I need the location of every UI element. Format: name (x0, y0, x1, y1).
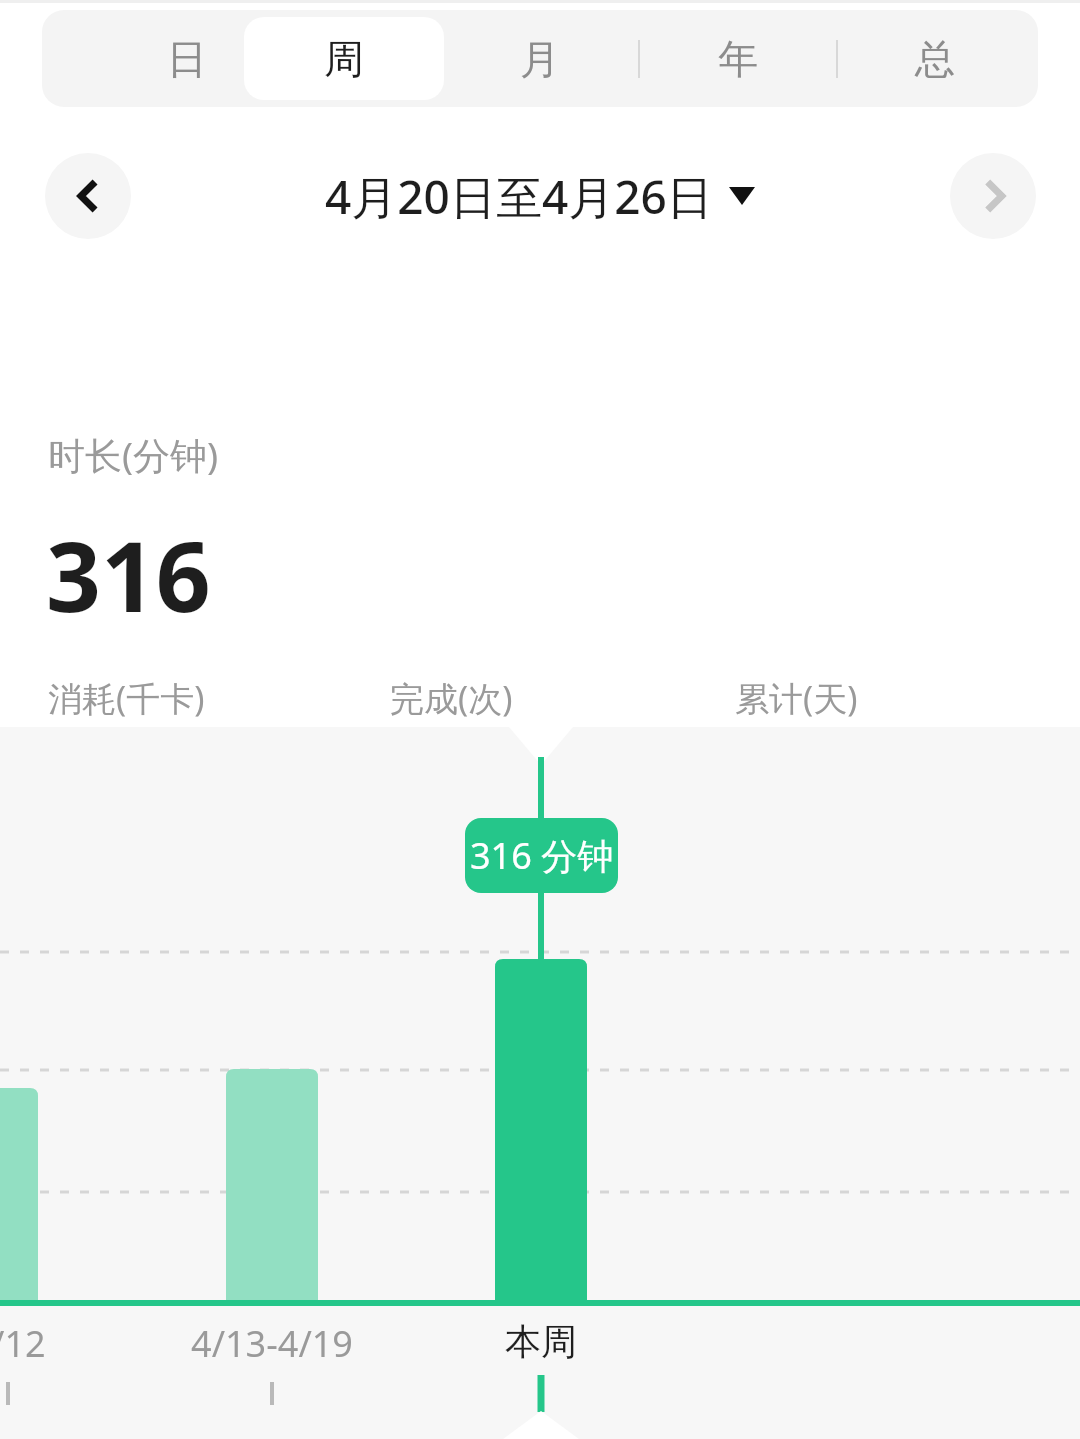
staticText: 本周 (505, 1319, 577, 1364)
button[interactable]: Previous week (45, 153, 131, 239)
button[interactable]: 累计(天) (735, 675, 1035, 808)
button[interactable]: 完成(次) (390, 675, 690, 808)
staticText: 年 (718, 34, 758, 84)
staticText: 时长(分钟) (48, 429, 219, 480)
staticText: 4/13-4/19 (191, 1319, 353, 1368)
button[interactable]: Next week (950, 153, 1036, 239)
staticText: 总 (915, 34, 955, 84)
staticText: 周 (324, 34, 364, 84)
staticText: 消耗(千卡) (48, 675, 205, 721)
staticText: 累计(天) (735, 675, 858, 721)
staticText: 月 (520, 34, 560, 84)
staticText: 316 (46, 509, 211, 640)
staticText: 日 (167, 34, 207, 84)
button[interactable]: 316 分钟 (465, 818, 618, 893)
button[interactable]: 消耗(千卡) (48, 675, 348, 808)
button[interactable]: 日 (97, 17, 277, 100)
staticText: 316 分钟 (470, 831, 614, 880)
button[interactable]: 4月20日至4月26日 (0, 153, 1080, 239)
button[interactable]: 周 (254, 17, 434, 100)
button[interactable]: 4/13-4/19 (122, 1319, 422, 1368)
staticText: 完成(次) (390, 675, 513, 721)
button[interactable]: 本周 (391, 1319, 691, 1364)
button[interactable]: 月 (450, 17, 630, 100)
button[interactable]: 年 (648, 17, 828, 100)
staticText: 4月20日至4月26日 (325, 165, 713, 228)
button[interactable]: 总 (845, 17, 1025, 100)
staticText: 4/12 (0, 1319, 46, 1368)
